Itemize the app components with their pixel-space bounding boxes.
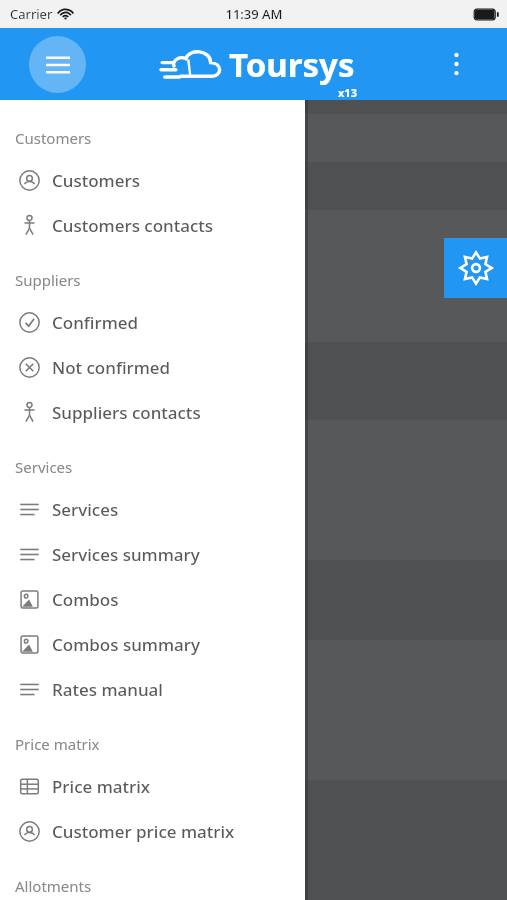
button[interactable]: Open navigation drawer [29,36,86,93]
button[interactable]: Customers contacts [0,203,305,248]
staticText: Price matrix [15,734,100,754]
button[interactable]: Combos [0,577,305,622]
staticText: Combos summary [52,633,200,656]
staticText: Suppliers contacts [52,401,201,424]
staticText: Suppliers [15,270,81,290]
staticText: Carrier [10,5,53,23]
button[interactable]: More options [441,49,471,79]
staticText: Rates manual [52,678,163,701]
button[interactable]: Suppliers contacts [0,390,305,435]
staticText: Services summary [52,543,200,566]
staticText: x13 [338,85,357,100]
button[interactable]: Combos summary [0,622,305,667]
staticText: Customers [15,128,92,148]
staticText: Toursys [229,42,355,87]
staticText: Services [52,498,119,521]
staticText: Combos [52,588,119,611]
staticText: Price matrix [52,775,151,798]
button[interactable]: Services [0,487,305,532]
staticText: Allotments [15,876,92,896]
staticText: Customers contacts [52,214,214,237]
button[interactable]: Rates manual [0,667,305,712]
button[interactable]: Confirmed [0,300,305,345]
button[interactable]: Not confirmed [0,345,305,390]
staticText: 11:39 AM [225,5,283,23]
staticText: Customers [52,169,140,192]
staticText: Not confirmed [52,356,171,379]
staticText: Confirmed [52,311,139,334]
button[interactable]: Services summary [0,532,305,577]
button[interactable]: Customer price matrix [0,809,305,854]
button[interactable]: Price matrix [0,764,305,809]
button[interactable]: Customers [0,158,305,203]
button[interactable]: Settings [444,238,507,298]
staticText: Customer price matrix [52,820,235,843]
staticText: Services [15,457,73,477]
